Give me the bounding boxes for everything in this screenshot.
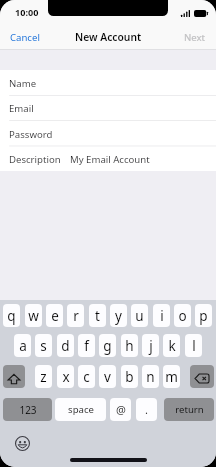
staticText: Cancel bbox=[10, 31, 40, 44]
staticText: r bbox=[73, 307, 79, 325]
button[interactable]: Email bbox=[0, 95, 216, 120]
staticText: return bbox=[175, 403, 204, 416]
button[interactable]: Name bbox=[0, 70, 216, 95]
button[interactable]: n bbox=[142, 365, 159, 388]
staticText: My Email Account bbox=[70, 153, 150, 166]
staticText: Name bbox=[9, 77, 37, 90]
button[interactable]: Backspace bbox=[190, 365, 214, 388]
button[interactable]: q bbox=[3, 304, 20, 327]
staticText: u bbox=[135, 307, 144, 325]
button[interactable]: return bbox=[164, 398, 214, 421]
staticText: b bbox=[125, 368, 134, 386]
staticText: p bbox=[199, 307, 208, 325]
button[interactable]: w bbox=[25, 304, 42, 327]
button[interactable]: p bbox=[195, 304, 212, 327]
button[interactable]: b bbox=[121, 365, 138, 388]
staticText: q bbox=[7, 307, 16, 325]
button[interactable]: k bbox=[163, 334, 180, 357]
button[interactable]: h bbox=[121, 334, 138, 357]
staticText: 10:00 bbox=[15, 6, 39, 18]
staticText: New Account bbox=[75, 30, 142, 44]
button[interactable]: Emoji keyboard bbox=[15, 436, 30, 451]
staticText: . bbox=[145, 402, 148, 417]
staticText: y bbox=[115, 307, 122, 325]
button[interactable]: j bbox=[142, 334, 159, 357]
button[interactable]: Cancel bbox=[0, 29, 49, 46]
button[interactable]: d bbox=[57, 334, 74, 357]
staticText: x bbox=[62, 368, 70, 386]
button[interactable]: space bbox=[55, 398, 106, 421]
staticText: a bbox=[19, 337, 27, 355]
staticText: l bbox=[192, 337, 196, 355]
button[interactable]: Next bbox=[175, 29, 216, 46]
staticText: i bbox=[160, 307, 164, 325]
button[interactable]: t bbox=[89, 304, 106, 327]
button[interactable]: m bbox=[163, 365, 180, 388]
staticText: f bbox=[84, 337, 89, 355]
button[interactable]: i bbox=[153, 304, 170, 327]
staticText: Next bbox=[184, 31, 206, 44]
staticText: e bbox=[51, 307, 59, 325]
button[interactable]: u bbox=[131, 304, 148, 327]
staticText: t bbox=[95, 307, 100, 325]
staticText: w bbox=[28, 307, 39, 325]
staticText: 123 bbox=[19, 403, 37, 417]
staticText: o bbox=[178, 307, 187, 325]
staticText: d bbox=[61, 337, 70, 355]
button[interactable]: s bbox=[35, 334, 52, 357]
staticText: Email bbox=[9, 102, 34, 115]
staticText: Description bbox=[9, 153, 61, 166]
button[interactable]: f bbox=[78, 334, 95, 357]
staticText: k bbox=[168, 337, 176, 355]
staticText: s bbox=[40, 337, 47, 355]
button[interactable]: 123 bbox=[3, 398, 52, 421]
staticText: m bbox=[165, 368, 178, 386]
staticText: n bbox=[146, 368, 155, 386]
button[interactable]: o bbox=[174, 304, 191, 327]
staticText: Password bbox=[9, 128, 53, 141]
button[interactable]: Description bbox=[0, 146, 216, 171]
button[interactable]: Password bbox=[0, 121, 216, 146]
button[interactable]: z bbox=[35, 365, 52, 388]
staticText: @ bbox=[116, 402, 126, 417]
staticText: h bbox=[125, 337, 134, 355]
button[interactable]: Shift bbox=[3, 365, 25, 388]
button[interactable]: e bbox=[46, 304, 63, 327]
staticText: g bbox=[103, 337, 112, 355]
button[interactable]: g bbox=[99, 334, 116, 357]
button[interactable]: x bbox=[57, 365, 74, 388]
button[interactable]: c bbox=[78, 365, 95, 388]
staticText: z bbox=[40, 368, 47, 386]
button[interactable]: r bbox=[67, 304, 84, 327]
staticText: space bbox=[68, 403, 94, 416]
button[interactable]: a bbox=[14, 334, 31, 357]
staticText: v bbox=[104, 368, 111, 386]
button[interactable]: l bbox=[185, 334, 202, 357]
button[interactable]: y bbox=[110, 304, 127, 327]
button[interactable]: . bbox=[136, 398, 157, 421]
button[interactable]: v bbox=[99, 365, 116, 388]
button[interactable]: @ bbox=[110, 398, 131, 421]
staticText: j bbox=[149, 337, 153, 355]
staticText: c bbox=[83, 368, 90, 386]
